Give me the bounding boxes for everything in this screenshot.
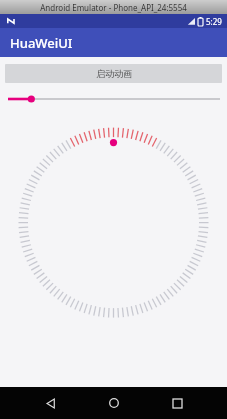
button[interactable] (0, 92, 227, 106)
staticText: Android Emulator - Phone_API_24:5554 (40, 2, 187, 13)
staticText: 5:29 (206, 16, 222, 27)
staticText: HuaWeiUI (10, 34, 73, 52)
button[interactable]: Back (37, 390, 63, 416)
button[interactable]: Recents (164, 390, 190, 416)
button[interactable]: Home (101, 390, 127, 416)
staticText: 启动动画 (96, 68, 132, 79)
button[interactable]: 启动动画 (5, 64, 222, 83)
